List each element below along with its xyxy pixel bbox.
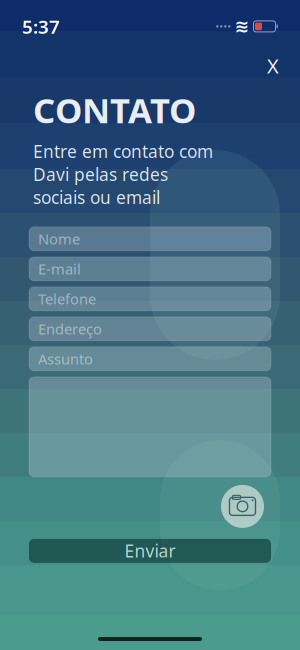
staticText: ≋ — [234, 17, 249, 36]
button[interactable]: E-mail — [29, 257, 271, 281]
staticText: 5:37 — [22, 14, 60, 39]
staticText: Entre em contato com Davi pelas redes so… — [33, 140, 213, 209]
button[interactable]: Enviar — [29, 539, 271, 563]
button[interactable]: Adicionar foto — [221, 485, 264, 528]
staticText: Telefone — [38, 289, 96, 309]
button[interactable]: Assunto — [29, 347, 271, 371]
button[interactable]: Fechar — [256, 51, 290, 81]
staticText: Enviar — [124, 539, 175, 562]
staticText: E-mail — [38, 259, 81, 279]
staticText: Endereço — [38, 319, 102, 339]
staticText: X — [267, 52, 279, 79]
button[interactable]: Nome — [29, 227, 271, 251]
staticText: Nome — [38, 229, 80, 249]
button[interactable]: Endereço — [29, 317, 271, 341]
button[interactable]: Telefone — [29, 287, 271, 311]
button[interactable]: Mensagem — [29, 377, 271, 477]
staticText: CONTATO — [33, 87, 196, 133]
staticText: Assunto — [38, 349, 93, 369]
